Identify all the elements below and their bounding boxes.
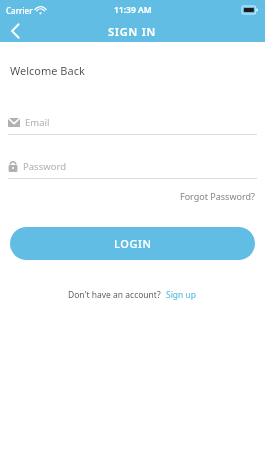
button[interactable]: LOGIN xyxy=(10,227,255,260)
staticText: Email xyxy=(25,116,50,129)
staticText: Password xyxy=(23,160,66,173)
staticText: Forgot Password? xyxy=(180,190,255,202)
button[interactable]: Password field xyxy=(0,157,265,179)
staticText: 11:39 AM xyxy=(114,4,152,16)
staticText: SIGN IN xyxy=(108,24,157,39)
button[interactable]: Email field xyxy=(0,113,265,135)
staticText: LOGIN xyxy=(114,236,152,251)
button[interactable]: Sign up xyxy=(165,286,198,304)
staticText: Carrier xyxy=(6,5,33,16)
staticText: Welcome Back xyxy=(10,63,85,78)
staticText: Sign up xyxy=(166,289,197,301)
staticText: Don't have an account? xyxy=(68,289,161,301)
button[interactable]: Forgot Password? xyxy=(178,187,257,205)
button[interactable]: Back xyxy=(0,20,30,42)
